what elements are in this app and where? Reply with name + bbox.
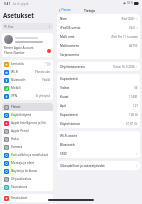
staticText: 128 Gt <box>129 113 138 117</box>
staticText: 11400 <box>129 95 138 99</box>
staticText: Yleiset <box>11 105 21 109</box>
button[interactable]: Hae <box>4 23 51 30</box>
button[interactable]: SSID <box>60 149 138 158</box>
button[interactable]: Kapasiteetti <box>60 74 138 83</box>
button[interactable]: Haku <box>4 135 51 143</box>
staticText: Kapasiteetti <box>60 113 78 117</box>
button[interactable]: Apple Intelligence ja Siri <box>4 119 51 127</box>
button[interactable]: Wi-Fi-osoite <box>60 131 138 140</box>
staticText: Ilmoitukset <box>11 196 28 200</box>
staticText: Moniajo ja eleet <box>11 161 35 165</box>
staticText: Phone Number <box>4 51 25 55</box>
staticText: 26.0 <box>129 26 135 30</box>
staticText: Apple Pencil <box>11 129 29 133</box>
staticText: Wi-Fi <box>11 70 19 74</box>
other: Back <box>58 9 61 12</box>
staticText: 51,81 Gt <box>126 122 138 126</box>
staticText: Videot <box>60 86 70 90</box>
button[interactable]: Apple Pencil <box>4 127 51 135</box>
staticText: Taustakuva <box>11 185 28 189</box>
button[interactable]: Apit <box>60 101 138 110</box>
staticText: Käyttöliittymä <box>11 113 32 117</box>
staticText: iPadOS-versio <box>60 26 81 30</box>
staticText: Koti-valikko ja sovellukset <box>11 153 49 157</box>
button[interactable]: Taustakuva <box>4 183 51 191</box>
staticText: Kapasiteetti <box>60 77 78 81</box>
staticText: Sarjanumero <box>60 53 80 57</box>
staticText: 92 % <box>127 1 133 5</box>
staticText: Wi-Fi-osoite <box>60 134 78 138</box>
staticText: Mallinumero <box>60 44 79 48</box>
staticText: Kuvat <box>60 95 69 99</box>
staticText: Malli nimi <box>60 35 75 39</box>
staticText: 9.41 <box>4 2 11 6</box>
button[interactable]: Videot <box>60 83 138 92</box>
staticText: VPN <box>11 94 18 98</box>
button[interactable]: Back <box>58 8 71 12</box>
staticText: Bluetooth <box>60 143 75 147</box>
staticText: iPad Pro 11 tuumaa <box>111 35 138 39</box>
button[interactable]: Wi-Fi <box>4 68 51 76</box>
button[interactable]: Kuvat <box>60 92 138 101</box>
staticText: Ei yhteyttä <box>36 94 51 98</box>
button[interactable]: Malli nimi <box>60 32 138 41</box>
staticText: Tietoja <box>84 8 95 12</box>
staticText: Lentotila <box>11 62 24 66</box>
staticText: Hae <box>8 25 14 29</box>
button[interactable]: Oikeudelliset ja sääntelytiedot <box>60 161 138 170</box>
staticText: SSID <box>60 152 67 156</box>
button[interactable]: Ohjelmistoversio <box>60 62 138 71</box>
button[interactable]: Ilmoitukset <box>4 194 51 202</box>
button[interactable]: Koti-valikko ja sovellukset <box>4 151 51 159</box>
staticText: A2759 <box>129 44 138 48</box>
button[interactable]: Sarjanumero <box>60 50 138 59</box>
button[interactable]: Mallinumero <box>60 41 138 50</box>
button[interactable]: Käyttöliittymä <box>4 111 51 119</box>
button[interactable]: Revere Apple Account <box>2 33 53 57</box>
staticText: Revere Apple Account <box>4 46 34 50</box>
staticText: ke 4. syysk. <box>13 2 30 6</box>
staticText: Yleiset <box>61 8 71 12</box>
staticText: Ohjauskeskus <box>11 177 32 181</box>
button[interactable]: Lentotila <box>4 60 51 68</box>
staticText: Planetcube <box>35 70 51 74</box>
staticText: Käytettävissä <box>60 122 80 126</box>
staticText: Näyttö ja kirkkaus <box>11 169 38 173</box>
staticText: Asetukset <box>3 11 34 20</box>
staticText: Bluetooth <box>11 78 26 82</box>
staticText: 121 <box>133 104 138 108</box>
button[interactable]: Näyttö ja kirkkaus <box>4 167 51 175</box>
staticText: Ohjelmistoversio <box>60 65 86 69</box>
button[interactable]: Bluetooth <box>60 140 138 149</box>
staticText: Haku <box>11 137 19 141</box>
button[interactable]: Nimi <box>60 14 138 23</box>
staticText: Mobiili <box>11 86 21 90</box>
button[interactable]: Mobiili <box>4 84 51 92</box>
button[interactable]: iPadOS-versio <box>60 23 138 32</box>
button[interactable]: VPN <box>4 92 51 100</box>
button[interactable]: Kapasiteetti <box>60 110 138 119</box>
staticText: Apit <box>60 104 66 108</box>
staticText: Tiistai 16.9.2025 <box>113 65 135 69</box>
button[interactable]: Kamera <box>4 143 51 151</box>
staticText: Kamera <box>11 145 23 149</box>
button[interactable]: Käytettävissä <box>60 119 138 128</box>
button[interactable]: Yleiset <box>4 103 51 111</box>
button[interactable]: Ohjauskeskus <box>4 175 51 183</box>
staticText: Oikeudelliset ja sääntelytiedot <box>60 164 105 168</box>
button[interactable]: Moniajo ja eleet <box>4 159 51 167</box>
staticText: Päällä <box>42 78 51 82</box>
staticText: Apple Intelligence ja Siri <box>11 121 46 125</box>
button[interactable]: Bluetooth <box>4 76 51 84</box>
staticText: 36 <box>134 86 138 90</box>
staticText: iPad (264) <box>121 17 135 21</box>
staticText: Nimi <box>60 17 68 21</box>
